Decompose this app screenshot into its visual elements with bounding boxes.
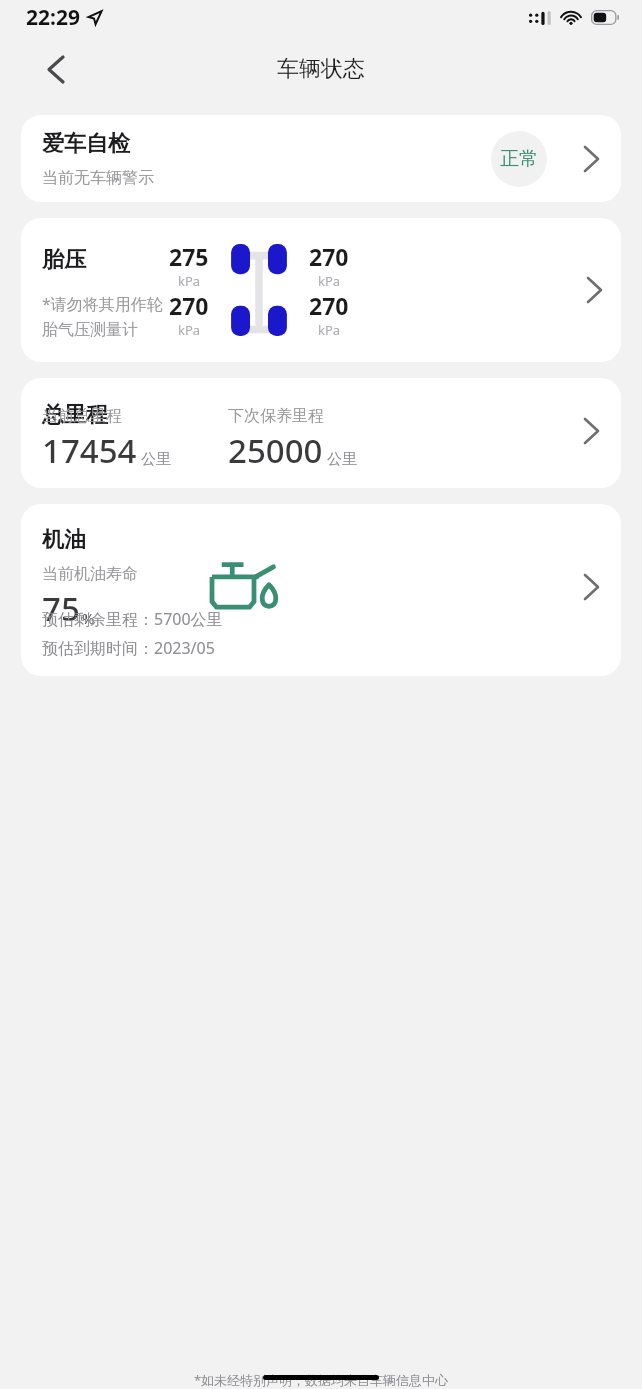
staticText: 总里程 xyxy=(42,401,108,429)
button[interactable]: 爱车自检 xyxy=(21,115,621,202)
staticText: 17454 xyxy=(42,428,137,473)
staticText: kPa xyxy=(178,321,201,339)
staticText: *如未经特别声明，数据均来自车辆信息中心 xyxy=(0,1371,642,1389)
staticText: kPa xyxy=(318,321,341,339)
staticText: 爱车自检 xyxy=(42,130,130,158)
staticText: 公里 xyxy=(141,450,171,469)
staticText: 预估剩余里程：5700公里 xyxy=(42,608,223,630)
staticText: 下次保养里程 xyxy=(228,406,324,426)
staticText: 270 xyxy=(309,290,349,321)
button[interactable]: Back xyxy=(28,41,84,97)
staticText: 机油 xyxy=(42,526,86,554)
button[interactable]: 胎压 xyxy=(21,218,621,362)
staticText: % xyxy=(82,608,95,628)
staticText: 胎气压测量计 xyxy=(42,320,138,340)
staticText: 25000 xyxy=(228,428,323,473)
other: Engine oil xyxy=(209,559,284,615)
button[interactable]: 机油 xyxy=(21,504,621,676)
staticText: kPa xyxy=(318,272,341,290)
staticText: 275 xyxy=(169,241,209,272)
staticText: 270 xyxy=(169,290,209,321)
staticText: 车辆状态 xyxy=(277,55,365,83)
staticText: 公里 xyxy=(327,450,357,469)
staticText: 胎压 xyxy=(42,246,86,274)
staticText: kPa xyxy=(178,272,201,290)
button[interactable]: 总里程 xyxy=(21,378,621,488)
staticText: 22:29 xyxy=(26,3,80,32)
staticText: 当前机油寿命 xyxy=(42,564,138,584)
staticText: 75 xyxy=(42,586,80,631)
staticText: *请勿将其用作轮 xyxy=(42,293,163,315)
staticText: 预估到期时间：2023/05 xyxy=(42,637,215,659)
staticText: 270 xyxy=(309,241,349,272)
staticText: 正常 xyxy=(500,147,538,171)
staticText: 当前总里程 xyxy=(42,406,122,426)
staticText: 当前无车辆警示 xyxy=(42,168,154,188)
